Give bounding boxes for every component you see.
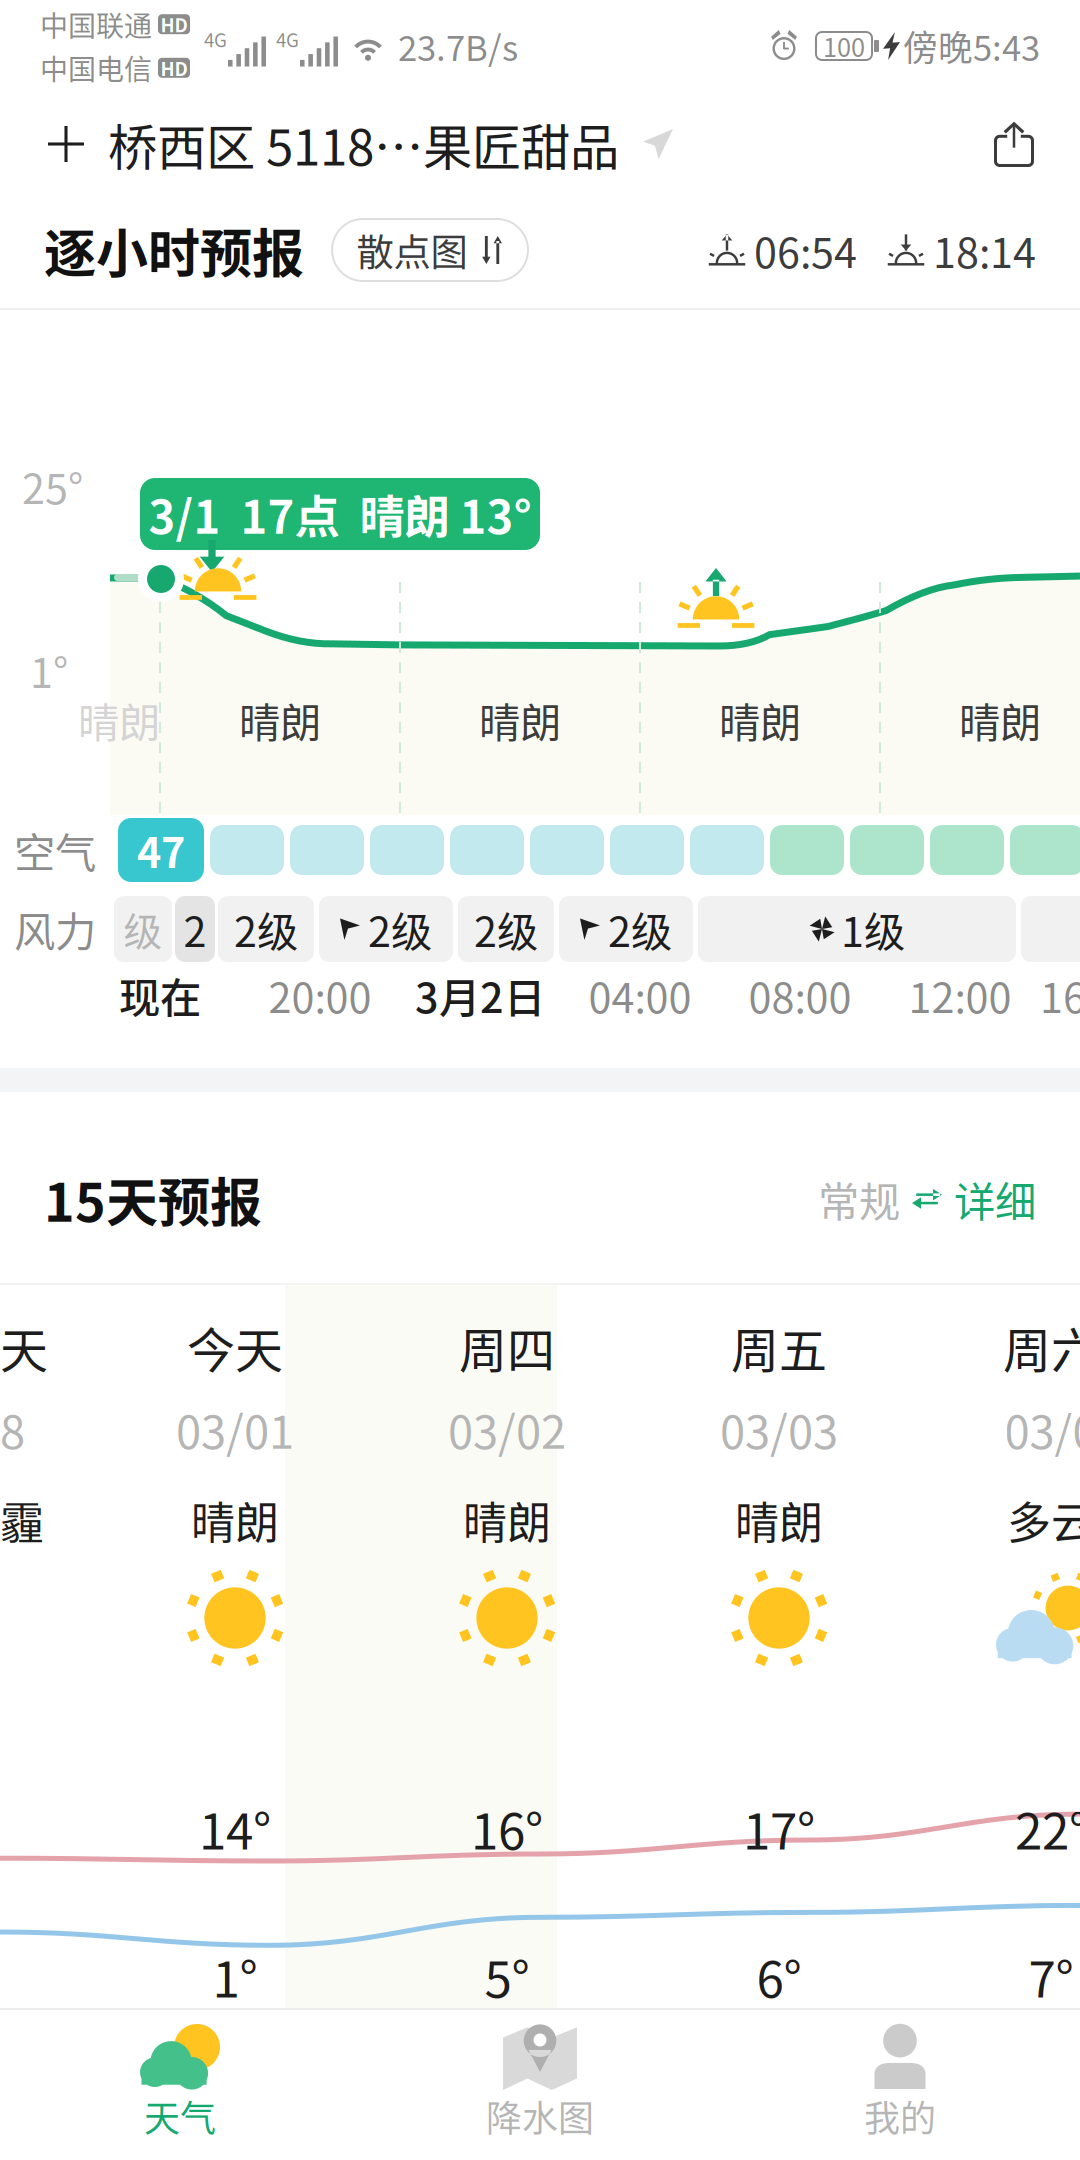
staticText: HD xyxy=(160,11,187,38)
staticText: 03/03 xyxy=(720,1396,838,1462)
staticText: 03/0 xyxy=(1004,1396,1080,1462)
staticText: 2级 xyxy=(234,899,298,959)
staticText: 8 xyxy=(0,1396,25,1462)
staticText: 晴朗 xyxy=(463,1488,551,1552)
staticText: 2级 xyxy=(368,899,432,959)
staticText: 16 xyxy=(1040,965,1080,1025)
staticText: 2级 xyxy=(474,899,538,959)
staticText: 多云 xyxy=(1007,1488,1080,1552)
staticText: 桥西区 5118…果匠甜品 xyxy=(108,108,619,180)
staticText: 2 xyxy=(183,899,206,959)
staticText: HD xyxy=(160,54,187,81)
staticText: 天气 xyxy=(144,2090,216,2142)
staticText: 18:14 xyxy=(933,220,1036,280)
button[interactable]: 分享 xyxy=(994,121,1080,167)
staticText: 霾 xyxy=(0,1488,44,1552)
staticText: 周四 xyxy=(459,1312,555,1382)
staticText: 03/01 xyxy=(176,1396,294,1462)
button[interactable]: 我的 xyxy=(720,2010,1080,2160)
staticText: 04:00 xyxy=(588,965,691,1025)
staticText: 晴朗 xyxy=(191,1488,279,1552)
staticText: 晴朗 xyxy=(719,690,801,750)
staticText: 100 xyxy=(823,28,865,64)
staticText: 16° xyxy=(471,1792,543,1864)
staticText: 周五 xyxy=(731,1312,827,1382)
staticText: 7° xyxy=(1028,1940,1073,2012)
staticText: 我的 xyxy=(864,2090,936,2142)
button[interactable]: 散点图 xyxy=(332,219,528,281)
staticText: 降水图 xyxy=(486,2090,594,2142)
staticText: 空气 xyxy=(14,820,96,880)
button[interactable]: 常规 xyxy=(818,1169,1080,1229)
button[interactable]: 桥西区 5118…果匠甜品 xyxy=(0,108,673,180)
button[interactable]: 天气 xyxy=(0,2010,360,2160)
staticText: 天 xyxy=(0,1312,48,1382)
staticText: 风力 xyxy=(14,899,96,959)
staticText: 傍晚5:43 xyxy=(903,21,1040,71)
staticText: 25° xyxy=(22,456,83,516)
staticText: 06:54 xyxy=(754,220,857,280)
staticText: 级 xyxy=(123,901,162,957)
staticText: 晴朗 xyxy=(959,690,1041,750)
staticText: 详细 xyxy=(954,1169,1036,1229)
staticText: 5° xyxy=(484,1940,529,2012)
staticText: 14° xyxy=(199,1792,271,1864)
staticText: 6° xyxy=(756,1940,801,2012)
staticText: 1° xyxy=(30,640,68,700)
staticText: 晴朗 xyxy=(78,690,160,750)
staticText: 22° xyxy=(1015,1792,1080,1864)
staticText: 12:00 xyxy=(908,965,1011,1025)
staticText: 晴朗 xyxy=(479,690,561,750)
button[interactable]: 降水图 xyxy=(360,2010,720,2160)
staticText: 现在 xyxy=(119,965,201,1025)
staticText: 中国电信 xyxy=(40,47,152,88)
staticText: 3/1 17点 晴朗 13° xyxy=(148,481,531,547)
staticText: 4G xyxy=(276,25,299,52)
staticText: 23.7B/s xyxy=(398,21,518,71)
staticText: 常规 xyxy=(818,1169,900,1229)
staticText: 中国联通 xyxy=(40,4,152,44)
staticText: 4G xyxy=(204,25,227,52)
staticText: 08:00 xyxy=(748,965,851,1025)
staticText: 散点图 xyxy=(356,223,467,277)
staticText: 2级 xyxy=(608,899,672,959)
staticText: 今天 xyxy=(187,1312,283,1382)
staticText: 15天预报 xyxy=(44,1161,262,1237)
staticText: 1级 xyxy=(841,899,905,959)
staticText: 47 xyxy=(137,820,185,880)
staticText: 逐小时预报 xyxy=(44,212,304,288)
staticText: 晴朗 xyxy=(239,690,321,750)
staticText: 17° xyxy=(743,1792,815,1864)
staticText: 03/02 xyxy=(448,1396,566,1462)
staticText: 1° xyxy=(212,1940,257,2012)
staticText: 3月2日 xyxy=(415,965,545,1025)
staticText: 晴朗 xyxy=(735,1488,823,1552)
staticText: 周六 xyxy=(1003,1312,1080,1382)
staticText: 20:00 xyxy=(268,965,371,1025)
